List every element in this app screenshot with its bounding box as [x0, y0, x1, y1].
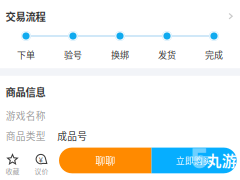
staticText: 成品号 — [57, 129, 87, 143]
staticText: 商品信息 — [5, 84, 45, 99]
staticText: 聊聊 — [95, 153, 115, 168]
staticText: 换绑 — [111, 48, 129, 61]
button[interactable]: 换绑 — [98, 31, 142, 61]
staticText: 游戏名称 — [6, 109, 46, 123]
staticText: 下单 — [17, 48, 35, 61]
button[interactable]: 发货 — [145, 31, 189, 61]
button[interactable]: 完成 — [192, 31, 236, 61]
button[interactable]: ¥ — [27, 154, 55, 176]
staticText: 完成 — [205, 48, 223, 61]
staticText: 立即购买 — [176, 154, 212, 167]
staticText: 丸游 — [207, 149, 237, 171]
button[interactable]: 聊聊 — [59, 148, 151, 173]
staticText: 发货 — [158, 48, 176, 61]
staticText: 收藏 — [5, 166, 19, 176]
staticText: ¥ — [39, 154, 43, 164]
button[interactable]: 验号 — [51, 31, 95, 61]
button[interactable]: 交易流程 — [0, 2, 240, 30]
button[interactable]: 收藏 — [0, 154, 26, 176]
button[interactable]: 立即购买 — [151, 148, 237, 173]
staticText: 验号 — [64, 48, 82, 61]
staticText: 交易流程 — [5, 9, 45, 24]
button[interactable]: 下单 — [4, 31, 48, 61]
staticText: 5 — [191, 140, 207, 174]
staticText: 商品类型 — [6, 129, 46, 143]
staticText: 议价 — [34, 166, 48, 176]
